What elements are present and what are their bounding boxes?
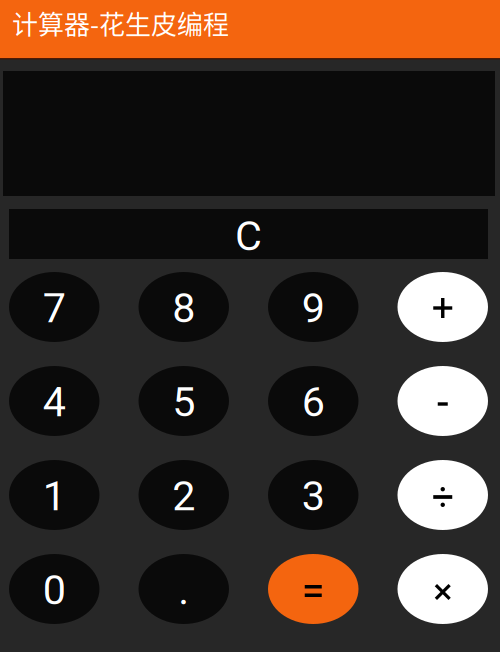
staticText: 5 bbox=[172, 378, 195, 426]
button[interactable]: 3 bbox=[268, 460, 358, 530]
button[interactable]: 7 bbox=[9, 272, 99, 342]
button[interactable]: 8 bbox=[138, 272, 229, 342]
button[interactable]: Plus bbox=[397, 272, 488, 342]
button[interactable]: 4 bbox=[9, 366, 99, 436]
button[interactable]: . bbox=[138, 554, 229, 624]
button[interactable]: C bbox=[9, 209, 488, 259]
staticText: 8 bbox=[172, 284, 195, 332]
button[interactable]: Divide bbox=[397, 460, 488, 530]
staticText: 0 bbox=[43, 566, 66, 614]
staticText: 6 bbox=[302, 378, 325, 426]
staticText: C bbox=[235, 212, 262, 260]
staticText: 3 bbox=[302, 472, 325, 520]
button[interactable]: 9 bbox=[268, 272, 358, 342]
button[interactable]: Multiply bbox=[397, 554, 488, 624]
button[interactable]: 1 bbox=[9, 460, 99, 530]
staticText: 2 bbox=[172, 472, 195, 520]
staticText: . bbox=[178, 566, 189, 614]
button[interactable]: Equals bbox=[268, 554, 358, 624]
staticText: 计算器-花生皮编程 bbox=[12, 4, 229, 42]
button[interactable]: Minus bbox=[397, 366, 488, 436]
staticText: 4 bbox=[43, 378, 66, 426]
button[interactable]: 0 bbox=[9, 554, 99, 624]
button[interactable]: 2 bbox=[138, 460, 229, 530]
button[interactable]: 5 bbox=[138, 366, 229, 436]
button[interactable]: 6 bbox=[268, 366, 358, 436]
staticText: 7 bbox=[43, 284, 66, 332]
staticText: 9 bbox=[302, 284, 325, 332]
staticText: 1 bbox=[43, 472, 66, 520]
